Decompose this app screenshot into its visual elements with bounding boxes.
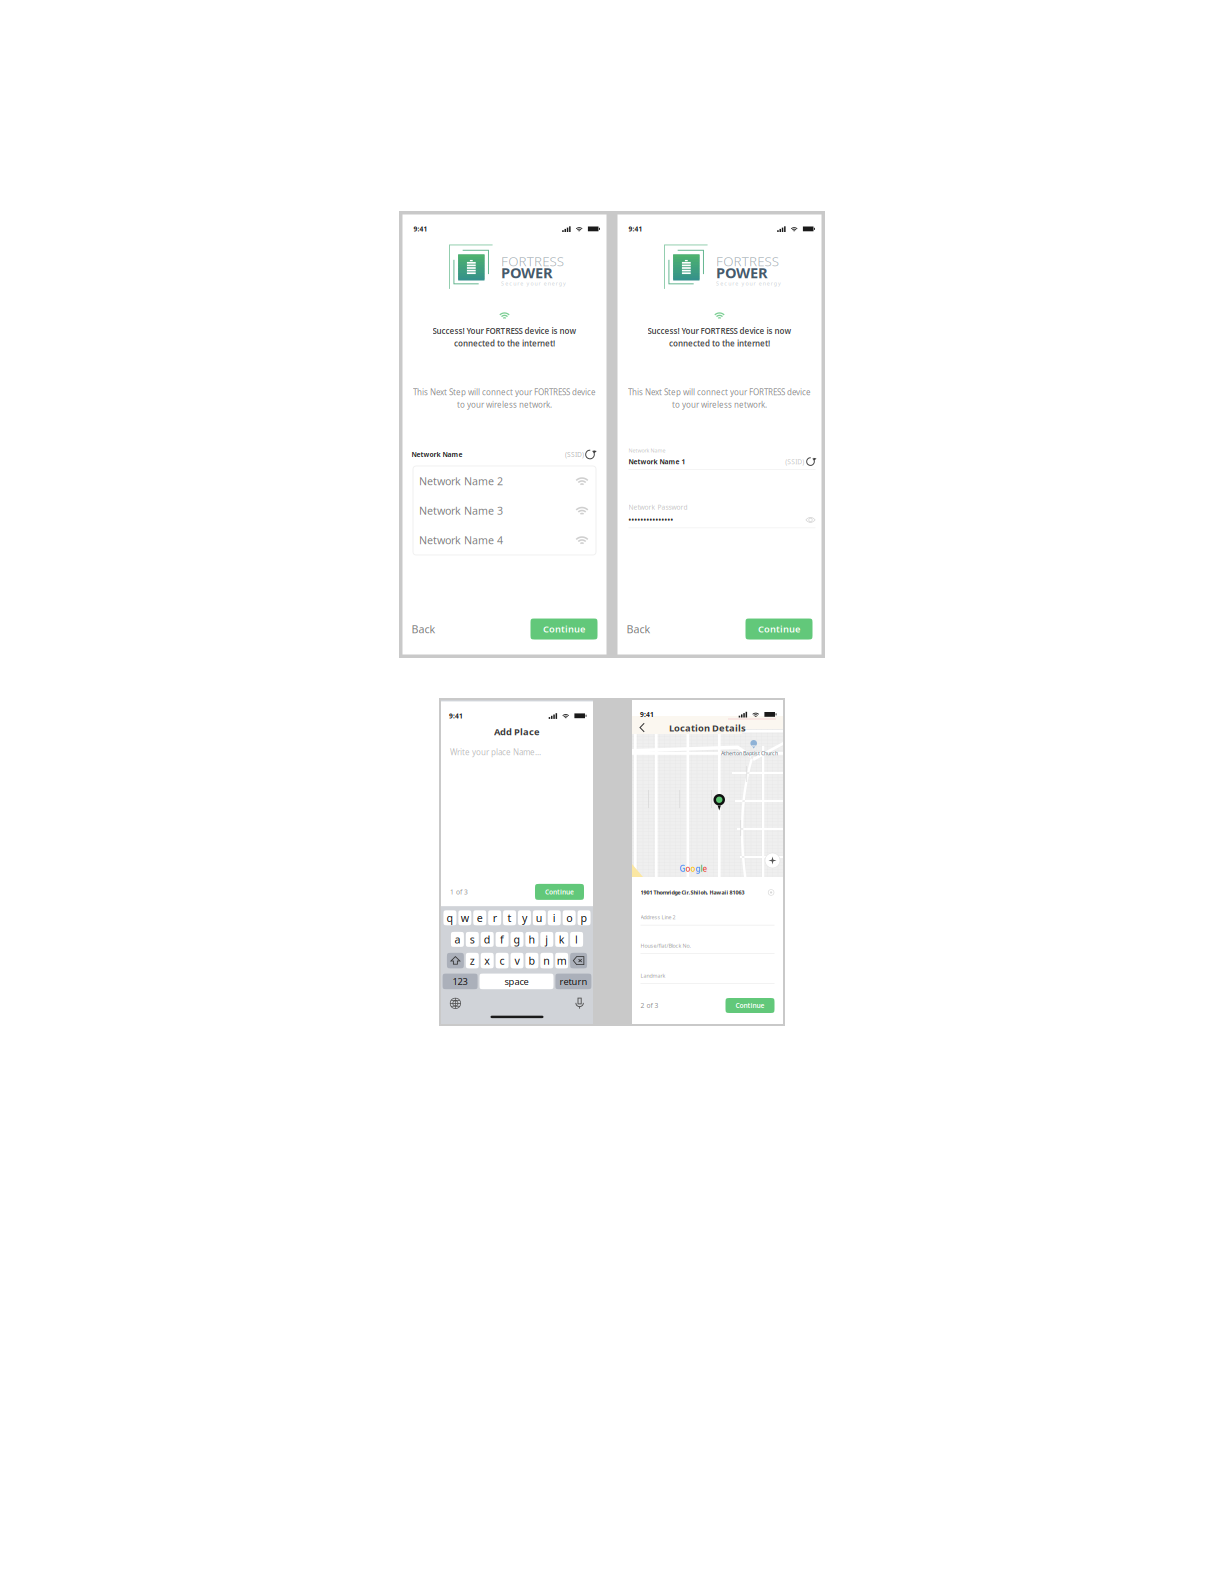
staticText: 123 — [453, 975, 468, 988]
staticText: m — [557, 953, 567, 968]
button[interactable]: o — [563, 910, 576, 925]
button[interactable]: v — [510, 953, 523, 968]
staticText: l — [575, 932, 578, 946]
staticText: Back — [626, 622, 650, 636]
staticText: i — [553, 911, 556, 925]
staticText: a — [454, 932, 460, 946]
staticText: x — [484, 953, 490, 968]
staticText: n — [543, 953, 550, 968]
staticText: FORTRESS — [501, 252, 564, 270]
staticText: Write your place Name... — [450, 747, 541, 757]
button[interactable]: f — [496, 932, 509, 947]
button[interactable]: c — [496, 953, 509, 968]
button[interactable]: x — [481, 953, 494, 968]
staticText: w — [461, 911, 469, 925]
staticText: u — [536, 911, 543, 925]
button[interactable]: Dictate — [575, 998, 584, 1009]
staticText: House/flat/Block No. — [640, 942, 690, 949]
staticText: G — [679, 863, 685, 874]
button[interactable]: q — [443, 910, 456, 925]
button[interactable]: b — [525, 953, 538, 968]
button[interactable]: h — [525, 932, 538, 947]
staticText: to your wireless network. — [457, 399, 552, 410]
button[interactable]: Delete — [570, 953, 587, 968]
staticText: l — [700, 863, 702, 874]
button[interactable]: Shift — [447, 953, 464, 968]
button[interactable]: d — [481, 932, 494, 947]
staticText: ••••••••••••••• — [628, 516, 673, 524]
button[interactable]: m — [555, 953, 568, 968]
staticText: j — [545, 932, 548, 946]
staticText: This Next Step will connect your FORTRES… — [628, 387, 811, 397]
staticText: Network Name 1 — [628, 457, 685, 466]
staticText: Location Details — [669, 722, 746, 734]
staticText: Add Place — [494, 725, 540, 738]
staticText: g — [695, 863, 700, 874]
staticText: b — [528, 953, 535, 968]
staticText: (SSID) — [785, 457, 804, 466]
button[interactable]: g — [510, 932, 523, 947]
staticText: Continue — [735, 1001, 764, 1010]
button[interactable]: Back — [626, 622, 650, 636]
staticText: c — [500, 953, 505, 968]
staticText: e — [477, 911, 483, 925]
staticText: Back — [411, 622, 435, 636]
staticText: Secure your energy — [501, 280, 566, 287]
button[interactable]: Back — [411, 622, 435, 636]
button[interactable]: Continue — [725, 998, 774, 1013]
button[interactable]: r — [488, 910, 501, 925]
button[interactable]: l — [570, 932, 583, 947]
button[interactable]: Back — [640, 723, 645, 733]
button[interactable]: s — [466, 932, 479, 947]
button[interactable]: Continue — [535, 884, 584, 900]
staticText: 9:41 — [449, 711, 463, 720]
staticText: q — [446, 911, 453, 925]
button[interactable]: k — [555, 932, 568, 947]
button[interactable]: Network Name 4 — [413, 525, 596, 555]
staticText: Secure your energy — [716, 280, 781, 287]
staticText: Network Name — [411, 450, 462, 459]
button[interactable]: u — [533, 910, 546, 925]
staticText: Network Name 4 — [419, 533, 503, 547]
staticText: p — [581, 911, 588, 925]
staticText: This Next Step will connect your FORTRES… — [413, 387, 596, 397]
staticText: y — [522, 911, 527, 925]
button[interactable]: t — [503, 910, 516, 925]
staticText: connected to the internet! — [669, 338, 770, 349]
button[interactable]: y — [518, 910, 531, 925]
staticText: 9:41 — [640, 710, 654, 719]
staticText: Success! Your FORTRESS device is now — [432, 325, 576, 336]
staticText: o — [685, 863, 690, 874]
button[interactable]: z — [466, 953, 479, 968]
staticText: h — [528, 932, 535, 946]
staticText: o — [690, 863, 695, 874]
button[interactable]: Show password — [805, 516, 815, 524]
staticText: return — [559, 975, 587, 988]
staticText: s — [470, 932, 475, 946]
button[interactable]: Network Name 3 — [413, 496, 596, 525]
staticText: Continue — [543, 623, 585, 635]
button[interactable]: a — [451, 932, 464, 947]
button[interactable]: Network Name 2 — [413, 466, 596, 496]
button[interactable]: i — [548, 910, 561, 925]
button[interactable]: w — [458, 910, 471, 925]
button[interactable]: Continue — [530, 618, 597, 639]
button[interactable]: Switch keyboard — [450, 998, 461, 1009]
staticText: f — [500, 932, 504, 946]
button[interactable]: Continue — [745, 618, 812, 639]
staticText: Network Name 2 — [419, 474, 503, 488]
button[interactable]: e — [473, 910, 486, 925]
button[interactable]: 123 — [443, 974, 478, 989]
staticText: t — [508, 911, 512, 925]
staticText: POWER — [501, 263, 553, 282]
staticText: Network Name — [628, 447, 665, 454]
button[interactable]: j — [540, 932, 553, 947]
staticText: d — [484, 932, 491, 946]
staticText: 1 of 3 — [450, 887, 468, 896]
button[interactable]: n — [540, 953, 553, 968]
staticText: 1901 Thornridge Cir. Shiloh, Hawaii 8106… — [640, 889, 744, 896]
staticText: Network Name 3 — [419, 503, 503, 518]
button[interactable]: space — [479, 974, 553, 989]
button[interactable]: p — [578, 910, 591, 925]
button[interactable]: return — [555, 974, 591, 989]
